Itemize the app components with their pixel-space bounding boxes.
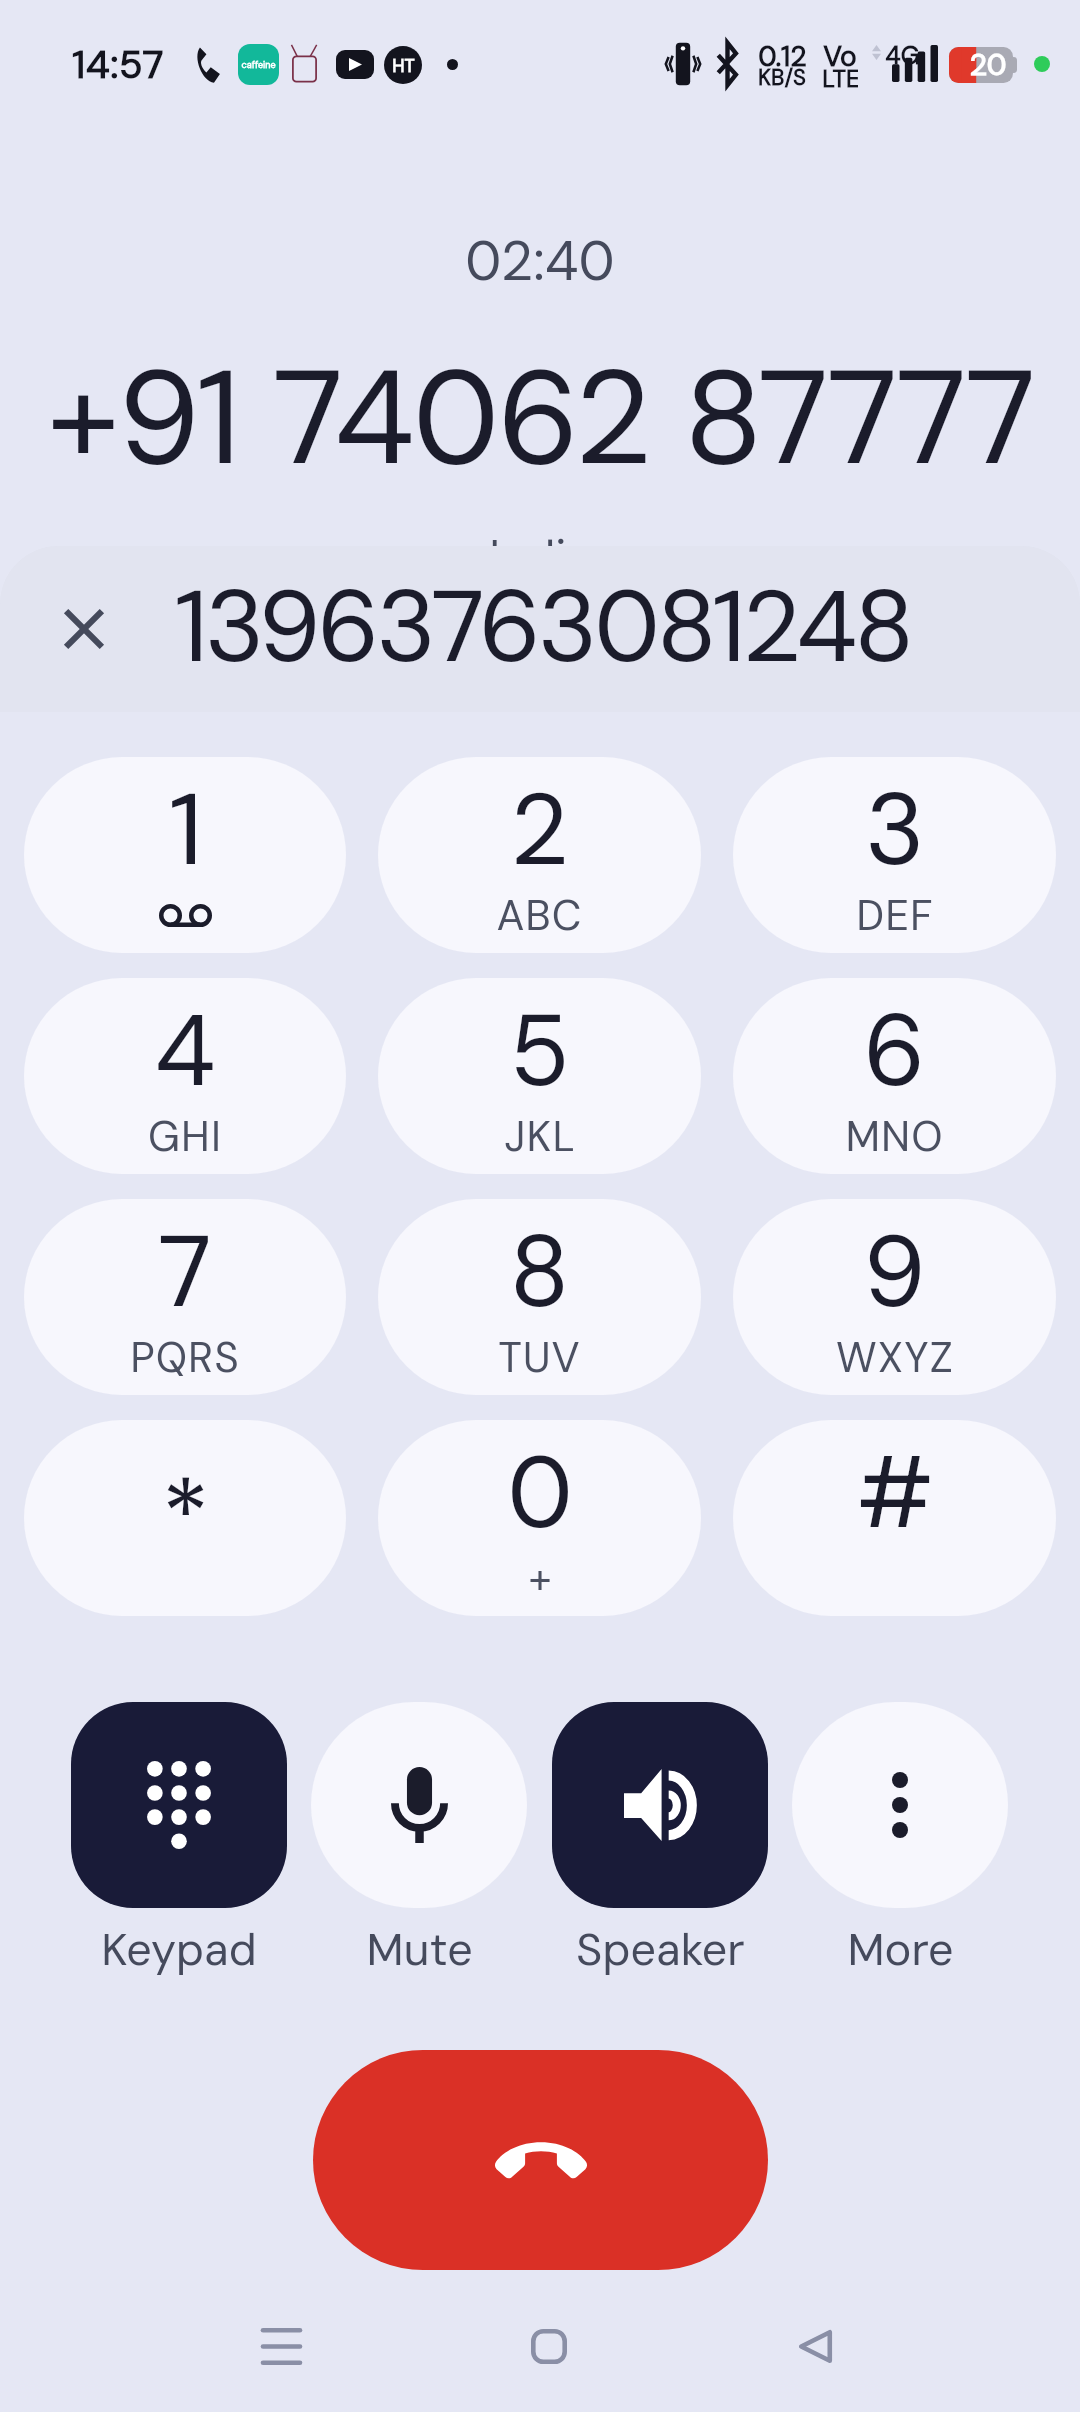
staticText: TUV xyxy=(498,1330,581,1385)
button[interactable]: 9 xyxy=(733,1199,1056,1395)
button[interactable]: Home xyxy=(489,2290,609,2402)
staticText: 7 xyxy=(158,1207,212,1337)
staticText: 2 xyxy=(510,765,569,895)
staticText: 14:57 xyxy=(72,39,164,90)
staticText: India xyxy=(489,527,592,587)
staticText: Keypad xyxy=(101,1920,257,1979)
staticText: 6 xyxy=(863,986,926,1116)
button[interactable]: 5 xyxy=(378,978,701,1174)
staticText: 20 xyxy=(969,45,1007,84)
button[interactable]: 8 xyxy=(378,1199,701,1395)
staticText: 8 xyxy=(509,1207,570,1337)
staticText: GHI xyxy=(148,1109,222,1164)
staticText: caffeine xyxy=(241,59,276,71)
button[interactable]: Back xyxy=(755,2290,875,2402)
staticText: 5 xyxy=(509,986,570,1116)
staticText: Mute xyxy=(366,1920,473,1979)
button[interactable]: 1 xyxy=(24,757,346,953)
staticText: 0.12 xyxy=(758,38,807,74)
staticText: Vo xyxy=(823,38,857,74)
button[interactable]: 0 xyxy=(378,1420,701,1616)
staticText: 4 xyxy=(154,986,216,1116)
button[interactable]: Recents xyxy=(221,2290,341,2402)
button[interactable]: Mute xyxy=(311,1702,527,1908)
button[interactable]: * xyxy=(24,1420,346,1616)
staticText: 4G xyxy=(885,39,920,72)
staticText: MNO xyxy=(845,1109,944,1164)
button[interactable]: Speaker xyxy=(552,1702,768,1908)
button[interactable]: End call xyxy=(313,2050,768,2270)
staticText: JKL xyxy=(504,1109,576,1164)
button[interactable]: More xyxy=(792,1702,1008,1908)
staticText: WXYZ xyxy=(836,1330,954,1385)
staticText: More xyxy=(847,1920,954,1979)
staticText: HT xyxy=(392,54,415,77)
button[interactable]: 4 xyxy=(24,978,346,1174)
staticText: ABC xyxy=(496,888,583,943)
staticText: PQRS xyxy=(130,1330,240,1385)
button[interactable]: 6 xyxy=(733,978,1056,1174)
staticText: 13963763081248 xyxy=(174,562,911,692)
button[interactable]: 3 xyxy=(733,757,1056,953)
staticText: * xyxy=(161,1452,210,1582)
staticText: 9 xyxy=(863,1207,926,1337)
button[interactable]: # xyxy=(733,1420,1056,1616)
staticText: +91 74062 87777 xyxy=(47,332,1034,504)
staticText: 1 xyxy=(168,765,203,895)
button[interactable]: Keypad xyxy=(71,1702,287,1908)
staticText: 0 xyxy=(507,1428,573,1558)
button[interactable]: 7 xyxy=(24,1199,346,1395)
staticText: DEF xyxy=(856,888,934,943)
staticText: + xyxy=(528,1551,552,1606)
staticText: KB/S xyxy=(758,63,806,92)
staticText: Speaker xyxy=(576,1920,745,1979)
staticText: 02:40 xyxy=(465,225,615,297)
button[interactable]: Clear xyxy=(38,583,130,675)
button[interactable]: 2 xyxy=(378,757,701,953)
staticText: # xyxy=(856,1428,934,1558)
staticText: 3 xyxy=(865,765,925,895)
staticText: LTE xyxy=(822,63,858,94)
